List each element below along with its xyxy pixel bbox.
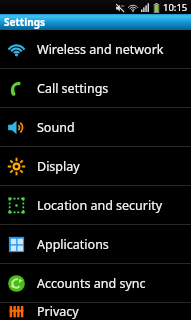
staticText: Call settings xyxy=(37,80,109,97)
staticText: Wireless and network xyxy=(37,41,164,58)
staticText: Applications xyxy=(37,236,109,253)
staticText: 10:15 xyxy=(163,1,188,14)
staticText: Privacy xyxy=(37,303,79,320)
button[interactable]: Call settings xyxy=(0,69,191,107)
staticText: Display xyxy=(37,158,80,175)
button[interactable]: Wireless and network xyxy=(0,30,191,68)
button[interactable]: Privacy xyxy=(0,303,191,320)
staticText: Settings xyxy=(4,15,45,29)
staticText: Accounts and sync xyxy=(37,275,146,292)
button[interactable]: Applications xyxy=(0,225,191,263)
button[interactable]: Accounts and sync xyxy=(0,264,191,302)
button[interactable]: Location and security xyxy=(0,186,191,224)
button[interactable]: Display xyxy=(0,147,191,185)
button[interactable]: Sound xyxy=(0,108,191,146)
staticText: Location and security xyxy=(37,197,163,214)
staticText: Sound xyxy=(37,119,75,136)
